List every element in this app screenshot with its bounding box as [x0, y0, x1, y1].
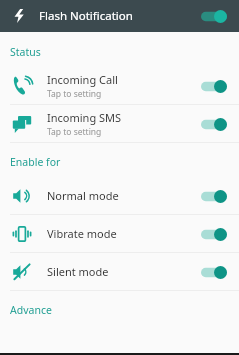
staticText: Status: [10, 45, 41, 59]
button[interactable]: Incoming SMS: [0, 105, 239, 142]
staticText: Silent mode: [47, 264, 109, 279]
staticText: Tap to setting: [47, 126, 102, 138]
button[interactable]: Toggle Silent mode: [197, 259, 231, 285]
staticText: Vibrate mode: [47, 226, 117, 241]
button[interactable]: Flash: [9, 6, 29, 26]
button[interactable]: Toggle Incoming Call: [197, 73, 231, 99]
button[interactable]: Toggle Incoming SMS: [197, 111, 231, 137]
button[interactable]: Incoming Call: [0, 67, 239, 104]
staticText: Flash Notification: [39, 8, 133, 24]
staticText: Advance: [10, 303, 52, 317]
button[interactable]: Toggle Normal mode: [197, 183, 231, 209]
staticText: Normal mode: [47, 188, 119, 203]
staticText: Tap to setting: [47, 88, 102, 100]
staticText: Incoming Call: [47, 72, 118, 87]
button[interactable]: Toggle Vibrate mode: [197, 221, 231, 247]
button[interactable]: Normal mode: [0, 177, 239, 214]
staticText: Enable for: [10, 155, 61, 169]
button[interactable]: Enable flash notification: [197, 4, 231, 28]
staticText: Incoming SMS: [47, 110, 122, 125]
button[interactable]: Silent mode: [0, 253, 239, 290]
button[interactable]: Vibrate mode: [0, 215, 239, 252]
